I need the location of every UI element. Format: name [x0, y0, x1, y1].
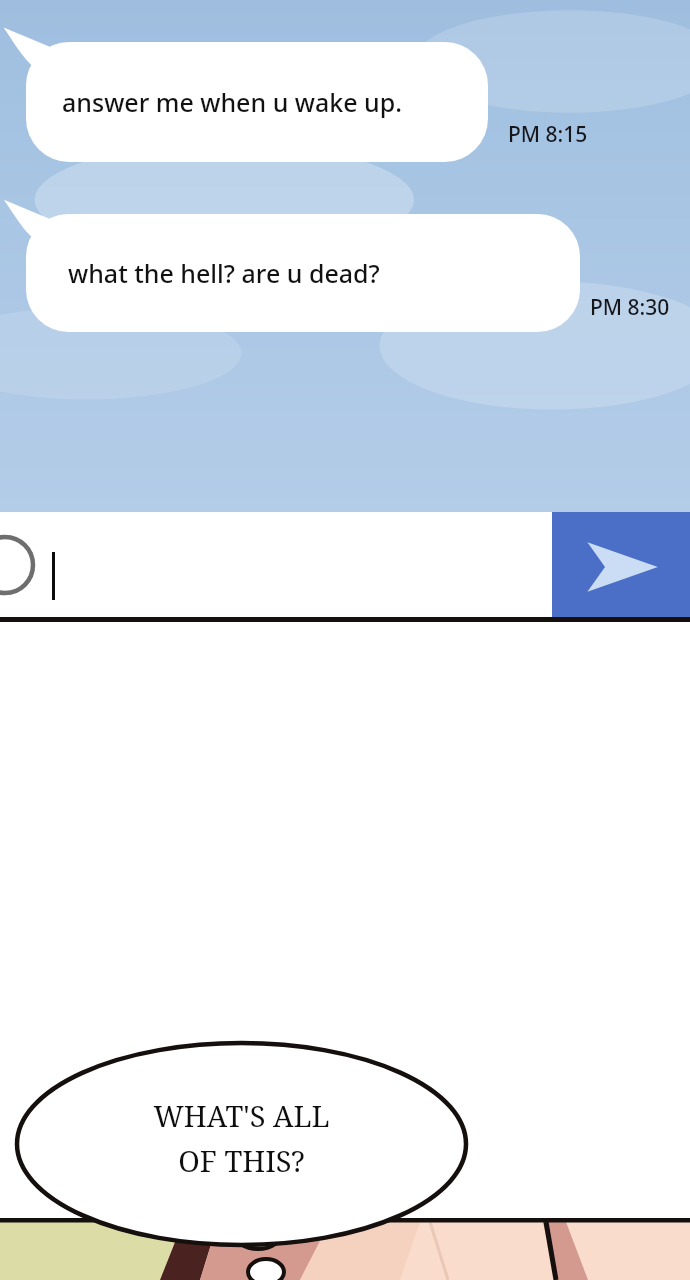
staticText: answer me when u wake up.: [62, 85, 403, 119]
staticText: PM 8:30: [590, 293, 670, 322]
staticText: WHAT'S ALL OF THIS?: [153, 1096, 330, 1181]
button[interactable]: Attach: [0, 534, 36, 596]
button[interactable]: Send: [552, 512, 690, 622]
button[interactable]: what the hell? are u dead?: [26, 214, 580, 332]
staticText: what the hell? are u dead?: [68, 256, 380, 290]
staticText: PM 8:15: [508, 120, 588, 149]
button[interactable]: Message input: [44, 512, 552, 622]
button[interactable]: answer me when u wake up.: [26, 42, 488, 162]
